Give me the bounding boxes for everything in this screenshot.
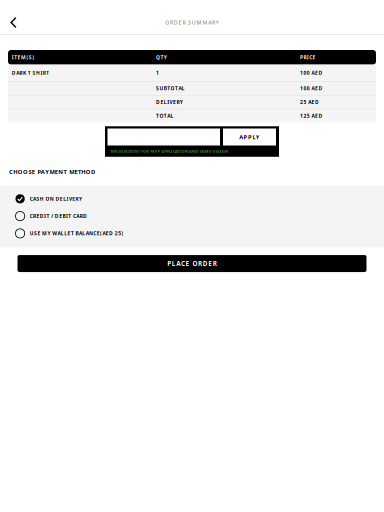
staticText: CREDIT / DEBIT CARD (30, 213, 87, 219)
staticText: CASH ON DELIVERY (30, 195, 82, 202)
staticText: 1 (156, 69, 159, 76)
staticText: CHOOSE PAYMENT METHOD (9, 168, 95, 176)
staticText: APPLY (239, 133, 260, 141)
staticText: 100 AED (300, 69, 322, 76)
staticText: 100 AED (300, 85, 322, 92)
staticText: PRICE (300, 54, 316, 61)
button[interactable]: Promo code (107, 128, 220, 145)
staticText: QTY (156, 54, 167, 61)
button[interactable]: CASH ON DELIVERY (0, 190, 384, 207)
staticText: 25 AED (300, 99, 319, 105)
staticText: ORDER SUMMARY (165, 19, 219, 26)
staticText: PLACE ORDER (167, 259, 217, 268)
staticText: USE MY WALLET BALANCE(AED 25) (30, 230, 123, 237)
button[interactable]: PLACE ORDER (17, 255, 366, 272)
staticText: 125 AED (300, 112, 322, 119)
staticText: SUBTOTAL (156, 85, 185, 92)
button[interactable]: APPLY (223, 128, 276, 145)
staticText: 10% DISCOUNT FOR MVP APPLICATION AND SAM… (110, 148, 228, 154)
button[interactable]: USE MY WALLET BALANCE(AED 25) (0, 225, 384, 242)
button[interactable]: Back (2, 11, 24, 33)
staticText: ITEM(S) (12, 54, 34, 61)
staticText: DARK T SHIRT (12, 69, 49, 76)
staticText: DELIVERY (156, 99, 183, 105)
button[interactable]: CREDIT / DEBIT CARD (0, 207, 384, 225)
staticText: TOTAL (156, 112, 174, 119)
